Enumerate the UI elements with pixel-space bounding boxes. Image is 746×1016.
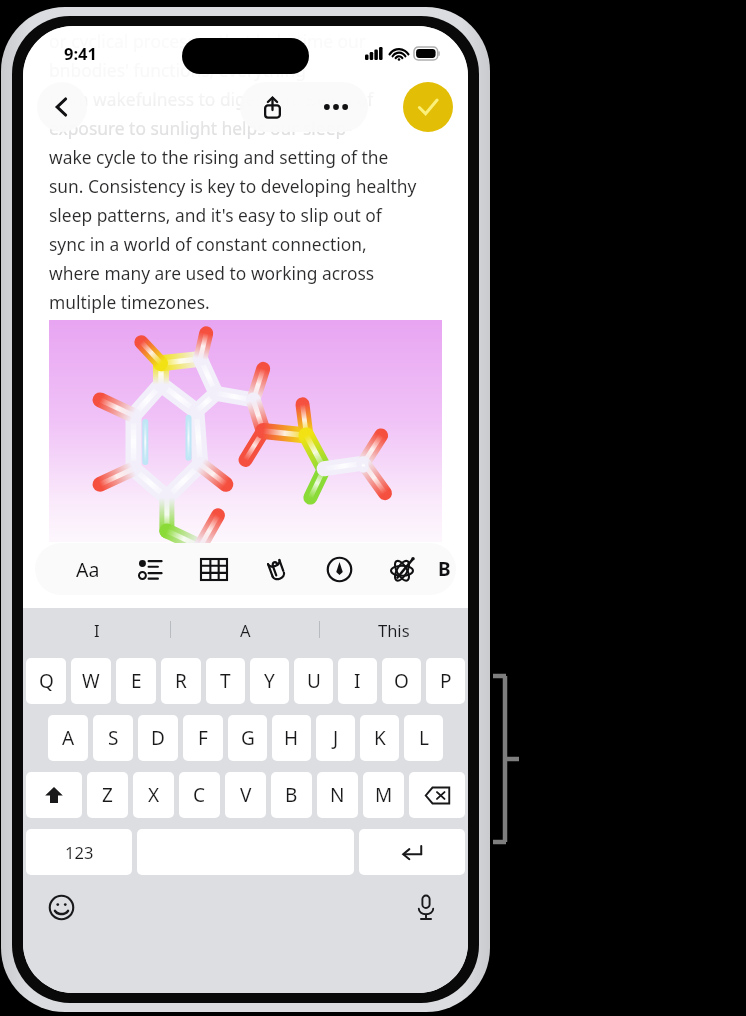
button[interactable]: F [183, 715, 223, 761]
staticText: E [131, 668, 142, 694]
staticText: or cyclical processes that help time our [49, 29, 367, 53]
button[interactable]: A [48, 715, 88, 761]
staticText: from wakefulness to digestion. Being of [49, 87, 374, 111]
button[interactable]: Checklist [119, 543, 182, 595]
staticText: I [94, 619, 100, 641]
staticText: V [240, 782, 252, 808]
button[interactable]: R [161, 658, 201, 704]
button[interactable]: N [317, 772, 358, 818]
staticText: X [148, 782, 160, 808]
button[interactable]: Text format [57, 543, 119, 595]
staticText: U [307, 668, 321, 694]
button[interactable]: I [338, 658, 377, 704]
staticText: B [438, 556, 451, 582]
button[interactable]: Attach [245, 543, 308, 595]
staticText: J [333, 725, 339, 751]
staticText: wake cycle to the rising and setting of … [49, 145, 389, 169]
button[interactable]: S [93, 715, 133, 761]
staticText: A [62, 725, 75, 751]
button[interactable]: Magic [371, 543, 434, 595]
staticText: where many are used to working across [49, 261, 375, 285]
button[interactable]: A [171, 608, 319, 651]
button[interactable]: Backspace [409, 772, 465, 818]
staticText: I [354, 668, 361, 694]
button[interactable]: U [294, 658, 333, 704]
staticText: C [193, 782, 206, 808]
staticText: S [108, 725, 119, 751]
button[interactable]: V [225, 772, 266, 818]
button[interactable]: 123 [26, 829, 132, 875]
button[interactable]: P [426, 658, 465, 704]
button[interactable]: Markup [308, 543, 371, 595]
button[interactable]: Done [403, 82, 453, 132]
staticText: Z [102, 782, 113, 808]
button[interactable]: Dictate [409, 890, 443, 924]
staticText: multiple timezones. [49, 290, 210, 314]
staticText: F [198, 725, 208, 751]
button[interactable]: Q [26, 658, 66, 704]
staticText: M [375, 782, 393, 808]
staticText: Q [39, 668, 54, 694]
staticText: W [82, 668, 100, 694]
button[interactable]: D [138, 715, 178, 761]
button[interactable]: O [382, 658, 421, 704]
staticText: bnbodies' functions, everything [49, 58, 306, 82]
button[interactable]: Table [182, 543, 245, 595]
staticText: Aa [76, 556, 100, 583]
staticText: O [394, 668, 409, 694]
button[interactable]: Z [87, 772, 128, 818]
staticText: sun. Consistency is key to developing he… [49, 174, 417, 198]
button[interactable]: Back [37, 82, 87, 132]
staticText: P [440, 668, 452, 694]
button[interactable]: E [116, 658, 156, 704]
button[interactable]: B [434, 543, 454, 595]
button[interactable]: X [133, 772, 174, 818]
button[interactable]: More options [304, 82, 368, 132]
button[interactable]: Shift [26, 772, 82, 818]
button[interactable]: This [320, 608, 468, 651]
button[interactable]: I [23, 608, 170, 651]
button[interactable]: C [179, 772, 220, 818]
staticText: T [220, 668, 231, 694]
button[interactable]: T [206, 658, 245, 704]
staticText: sleep patterns, and it's easy to slip ou… [49, 203, 382, 227]
button[interactable]: H [272, 715, 311, 761]
staticText: sync in a world of constant connection, [49, 232, 367, 256]
staticText: H [284, 725, 299, 751]
staticText: B [285, 782, 298, 808]
staticText: exposure to sunlight helps our sleep- [49, 116, 352, 140]
button[interactable]: Return [359, 829, 465, 875]
button[interactable]: L [404, 715, 443, 761]
staticText: N [330, 782, 345, 808]
staticText: D [151, 725, 165, 751]
button[interactable]: Emoji [44, 890, 78, 924]
button[interactable]: G [228, 715, 267, 761]
staticText: 123 [65, 841, 94, 863]
button[interactable]: B [271, 772, 312, 818]
staticText: 9:41 [64, 42, 97, 64]
staticText: L [419, 725, 429, 751]
staticText: This [378, 619, 410, 641]
staticText: Y [264, 668, 275, 694]
staticText: R [175, 668, 187, 694]
button[interactable]: W [71, 658, 111, 704]
button[interactable]: Y [250, 658, 289, 704]
staticText: K [374, 725, 386, 751]
staticText: A [240, 619, 251, 641]
button[interactable]: K [360, 715, 399, 761]
button[interactable]: Share [240, 82, 304, 132]
button[interactable]: M [363, 772, 404, 818]
button[interactable]: J [316, 715, 355, 761]
staticText: G [241, 725, 255, 751]
